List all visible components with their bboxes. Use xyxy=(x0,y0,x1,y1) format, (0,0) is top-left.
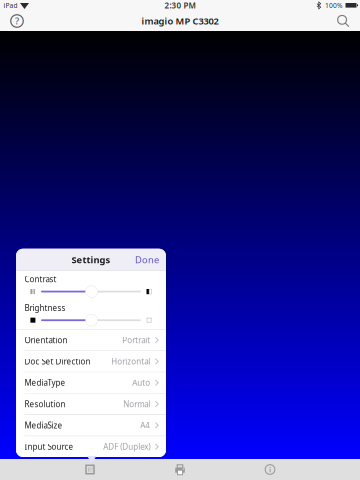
button[interactable]: MediaType xyxy=(16,372,166,393)
staticText: 2:30 PM xyxy=(164,0,195,11)
staticText: A4 xyxy=(140,420,150,431)
staticText: Done xyxy=(135,253,159,266)
button[interactable]: Info xyxy=(225,459,315,480)
staticText: Resolution xyxy=(24,399,65,409)
staticText: Doc Set Direction xyxy=(24,356,90,367)
staticText: ADF (Duplex) xyxy=(103,441,150,452)
staticText: Contrast xyxy=(24,274,56,285)
button[interactable]: Document xyxy=(45,459,135,480)
staticText: ? xyxy=(15,15,19,27)
button[interactable]: Done xyxy=(135,253,159,266)
staticText: MediaType xyxy=(24,377,65,388)
button[interactable]: Resolution xyxy=(16,394,166,414)
button[interactable]: Print xyxy=(135,459,225,480)
button[interactable]: MediaSize xyxy=(16,415,166,436)
staticText: Horizontal xyxy=(111,356,150,367)
staticText: Orientation xyxy=(24,335,67,345)
staticText: Portrait xyxy=(122,335,150,345)
staticText: 100% xyxy=(325,1,343,10)
staticText: Settings xyxy=(71,253,110,266)
staticText: imagio MP C3302 xyxy=(141,15,218,27)
button[interactable]: Search xyxy=(336,14,350,28)
staticText: iPad xyxy=(3,1,17,10)
staticText: Normal xyxy=(123,399,150,409)
button[interactable]: Input Source xyxy=(16,436,166,457)
staticText: Input Source xyxy=(24,441,73,452)
staticText: Auto xyxy=(132,377,150,388)
button[interactable]: Doc Set Direction xyxy=(16,351,166,372)
staticText: MediaSize xyxy=(24,420,62,431)
button[interactable]: Orientation xyxy=(16,330,166,350)
staticText: Brightness xyxy=(24,303,65,313)
button[interactable]: Help xyxy=(10,14,24,28)
